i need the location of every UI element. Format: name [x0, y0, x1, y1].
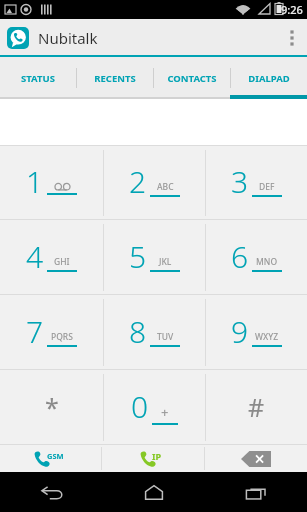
staticText: PQRS	[51, 331, 73, 343]
button[interactable]: STATUS	[0, 57, 76, 99]
staticText: WXYZ	[255, 331, 279, 343]
button[interactable]: 5	[103, 220, 205, 294]
staticText: +	[161, 403, 169, 421]
staticText: 2	[129, 161, 147, 202]
button[interactable]: 9	[205, 295, 307, 369]
staticText: 1	[26, 161, 44, 202]
button[interactable]: Call via GSM	[0, 445, 101, 472]
staticText: RECENTS	[94, 72, 136, 85]
staticText: 9:26	[281, 2, 303, 17]
button[interactable]: 3	[205, 146, 307, 219]
button[interactable]: Recent apps	[205, 472, 307, 512]
staticText: STATUS	[21, 72, 55, 85]
button[interactable]: Backspace	[205, 445, 307, 472]
button[interactable]: 4	[0, 220, 103, 294]
staticText: CONTACTS	[167, 72, 217, 85]
staticText: DIALPAD	[248, 72, 290, 85]
button[interactable]: Back	[0, 472, 103, 512]
staticText: GSM	[47, 451, 64, 461]
button[interactable]: RECENTS	[76, 57, 153, 99]
button[interactable]: 1	[0, 146, 103, 219]
button[interactable]: Home	[103, 472, 205, 512]
staticText: ABC	[157, 181, 174, 193]
staticText: GHI	[54, 256, 70, 268]
button[interactable]: More options	[277, 19, 307, 57]
staticText: TUV	[157, 331, 174, 343]
staticText: 4	[26, 236, 44, 277]
button[interactable]: 0	[103, 370, 205, 444]
staticText: 8	[129, 311, 147, 352]
button[interactable]: DIALPAD	[230, 57, 307, 99]
staticText: 6	[231, 236, 249, 277]
staticText: Nubitalk	[38, 28, 98, 48]
staticText: #	[248, 390, 265, 424]
staticText: 7	[26, 311, 44, 352]
staticText: 9	[231, 311, 249, 352]
button[interactable]: 2	[103, 146, 205, 219]
button[interactable]: 7	[0, 295, 103, 369]
staticText: 5	[129, 236, 147, 277]
button[interactable]: Call via IP	[102, 445, 204, 472]
staticText: MNO	[256, 256, 278, 268]
button[interactable]: 8	[103, 295, 205, 369]
staticText: JKL	[159, 256, 172, 268]
button[interactable]: 6	[205, 220, 307, 294]
staticText: 0	[131, 386, 149, 427]
button[interactable]: #	[205, 370, 307, 444]
staticText: 3	[231, 161, 249, 202]
staticText: *	[45, 390, 59, 424]
button[interactable]: CONTACTS	[153, 57, 230, 99]
staticText: IP	[152, 450, 162, 462]
button[interactable]: *	[0, 370, 103, 444]
staticText: DEF	[259, 181, 275, 193]
